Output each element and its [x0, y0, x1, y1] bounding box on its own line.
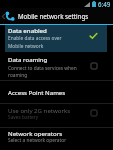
staticText: Network operators: [8, 129, 63, 137]
button[interactable]: Network operators: [0, 128, 113, 150]
staticText: 6:49: [98, 0, 111, 8]
staticText: Enable data access over: [8, 35, 62, 42]
button[interactable]: Access Point Names: [0, 81, 113, 103]
staticText: Use only 2G networks: [8, 106, 71, 114]
staticText: Data enabled: [8, 26, 47, 34]
staticText: Access Point Names: [8, 88, 66, 96]
staticText: Mobile network settings: [18, 12, 89, 20]
staticText: Data roaming: [8, 55, 48, 63]
staticText: Mobile network: [8, 43, 44, 50]
button[interactable]: Data roaming: [0, 52, 113, 80]
button[interactable]: Navigate up: [0, 8, 16, 25]
button[interactable]: Data enabled: [5, 25, 107, 52]
staticText: roaming: [8, 72, 28, 79]
staticText: Select a network operator: [8, 137, 67, 144]
staticText: Connect to data services when: [8, 65, 77, 72]
button[interactable]: Use only 2G networks: [0, 104, 113, 127]
staticText: Saves battery: [8, 114, 39, 121]
